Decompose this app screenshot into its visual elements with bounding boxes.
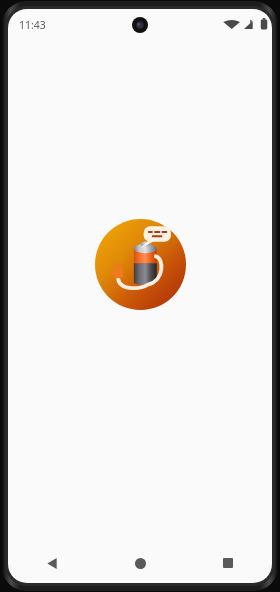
button[interactable]: Home <box>96 543 184 583</box>
button[interactable]: Back <box>8 543 96 583</box>
other: App logo: battery charging <box>95 219 186 310</box>
button[interactable]: Recent apps <box>184 543 272 583</box>
staticText: 11:43 <box>19 18 46 32</box>
